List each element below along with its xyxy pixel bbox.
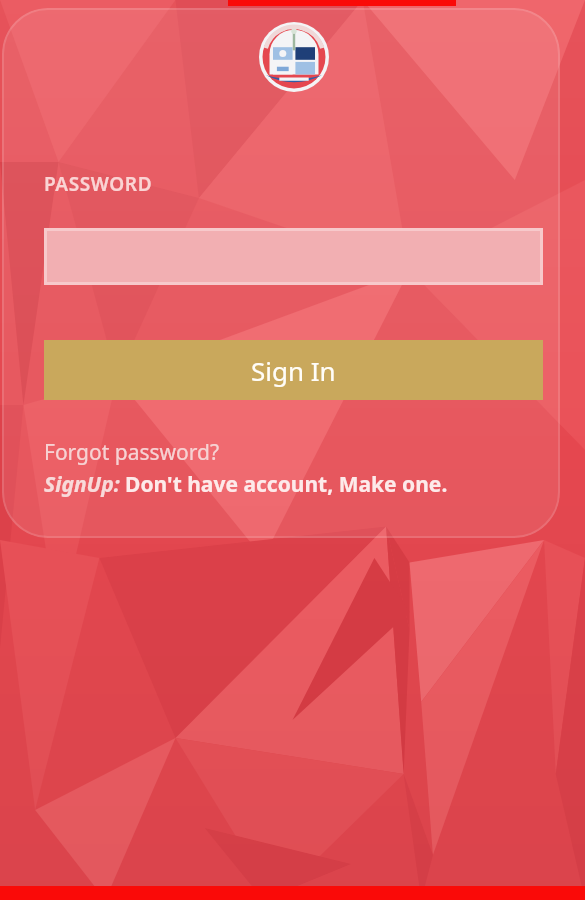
button[interactable]: Forgot password? <box>42 436 222 469</box>
button[interactable]: Sign In <box>44 340 543 400</box>
staticText: Sign In <box>251 353 336 388</box>
staticText: PASSWORD <box>44 171 153 197</box>
button[interactable]: SignUp: Don't have account, Make one. <box>42 468 450 501</box>
staticText: Forgot password? <box>44 438 220 467</box>
staticText: SignUp: Don't have account, Make one. <box>44 470 448 499</box>
